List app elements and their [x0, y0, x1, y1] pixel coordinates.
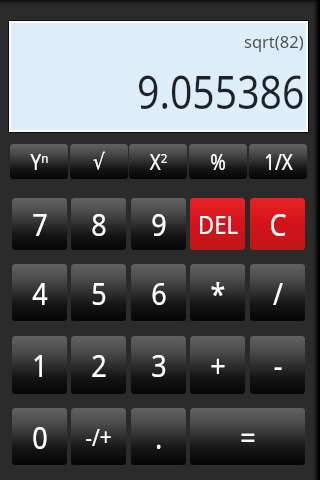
- staticText: *: [210, 272, 226, 314]
- button[interactable]: +: [190, 336, 245, 394]
- button[interactable]: %: [189, 144, 247, 179]
- staticText: sqrt(82): [244, 30, 304, 52]
- staticText: √: [93, 149, 105, 174]
- staticText: 4: [32, 272, 48, 314]
- staticText: 6: [151, 272, 167, 314]
- button[interactable]: 8: [71, 198, 126, 250]
- button[interactable]: X2: [129, 144, 187, 179]
- button[interactable]: √: [70, 144, 128, 179]
- staticText: +: [210, 344, 226, 386]
- staticText: 0: [32, 416, 48, 458]
- staticText: -: [274, 344, 282, 386]
- staticText: 3: [151, 344, 167, 386]
- staticText: =: [240, 416, 256, 458]
- staticText: 9: [151, 203, 167, 245]
- button[interactable]: C: [250, 198, 305, 250]
- staticText: 9.055386: [137, 61, 305, 122]
- staticText: 1: [32, 344, 48, 386]
- staticText: 8: [91, 203, 107, 245]
- button[interactable]: 3: [131, 336, 186, 394]
- button[interactable]: Yn: [10, 144, 68, 179]
- button[interactable]: 5: [71, 264, 126, 321]
- button[interactable]: 2: [71, 336, 126, 394]
- button[interactable]: .: [131, 408, 186, 465]
- staticText: 2: [91, 344, 107, 386]
- staticText: .: [155, 416, 162, 458]
- button[interactable]: *: [190, 264, 245, 321]
- staticText: %: [210, 147, 226, 176]
- button[interactable]: /: [250, 264, 305, 321]
- button[interactable]: 1/X: [249, 144, 307, 179]
- staticText: /: [273, 272, 283, 314]
- staticText: DEL: [198, 207, 238, 241]
- button[interactable]: 1: [12, 336, 67, 394]
- button[interactable]: -: [250, 336, 305, 394]
- button[interactable]: 7: [12, 198, 67, 250]
- staticText: 7: [32, 203, 48, 245]
- button[interactable]: 4: [12, 264, 67, 321]
- button[interactable]: 6: [131, 264, 186, 321]
- staticText: -/+: [85, 420, 112, 453]
- staticText: X2: [149, 147, 168, 176]
- button[interactable]: DEL: [190, 198, 245, 250]
- staticText: C: [269, 203, 287, 245]
- button[interactable]: -/+: [71, 408, 126, 465]
- button[interactable]: =: [190, 408, 305, 465]
- staticText: Yn: [30, 147, 49, 176]
- staticText: 1/X: [264, 147, 293, 176]
- button[interactable]: 0: [12, 408, 67, 465]
- staticText: 5: [91, 272, 107, 314]
- button[interactable]: 9: [131, 198, 186, 250]
